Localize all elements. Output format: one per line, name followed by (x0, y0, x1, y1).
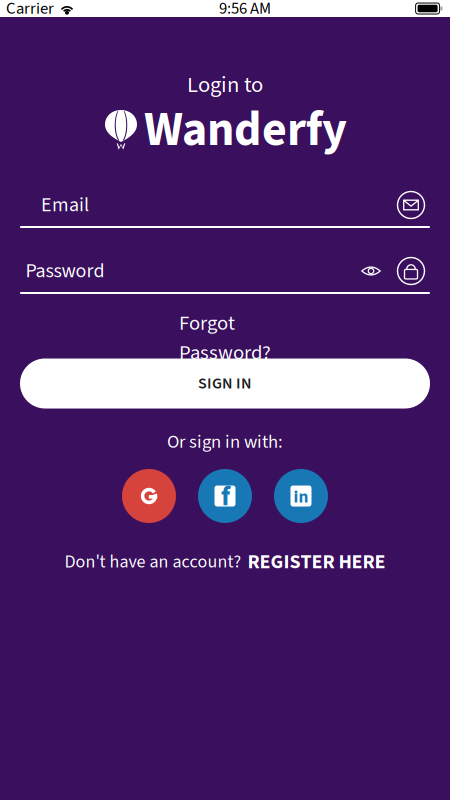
staticText: Email (41, 191, 89, 219)
button[interactable]: Sign in with LinkedIn (274, 469, 328, 523)
staticText: Or sign in with: (167, 429, 283, 455)
staticText: 9:56 AM (219, 0, 271, 20)
staticText: REGISTER HERE (247, 548, 385, 576)
button[interactable]: Sign in with Google (122, 469, 176, 523)
staticText: Login to (187, 69, 263, 101)
staticText: Carrier (6, 0, 54, 20)
staticText: in (293, 485, 308, 509)
button[interactable]: Password (20, 249, 430, 295)
staticText: Password (25, 257, 104, 285)
button[interactable]: REGISTER HERE (247, 548, 385, 576)
staticText: Forgot Password? (179, 309, 271, 367)
staticText: f (221, 478, 230, 516)
button[interactable]: Forgot Password? (155, 325, 295, 351)
button[interactable]: Sign in with Facebook (198, 469, 252, 523)
staticText: Don't have an account? (64, 549, 241, 575)
button[interactable]: Email (20, 183, 430, 229)
staticText: SIGN IN (198, 372, 252, 395)
staticText: Wanderfy (144, 96, 347, 164)
button[interactable]: SIGN IN (20, 358, 430, 408)
